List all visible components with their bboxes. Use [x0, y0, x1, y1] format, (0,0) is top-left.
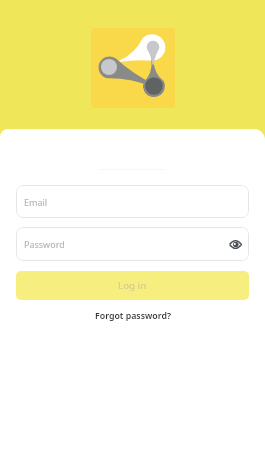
button[interactable]: Password: [16, 227, 249, 261]
button[interactable]: Forgot password?: [87, 308, 179, 324]
staticText: Email: [24, 196, 48, 208]
button[interactable]: Show password: [225, 234, 245, 254]
staticText: Log in: [118, 279, 147, 292]
staticText: Forgot password?: [95, 310, 171, 322]
staticText: Password: [24, 238, 65, 250]
button[interactable]: Email: [16, 185, 249, 218]
button[interactable]: Log in: [16, 271, 249, 300]
